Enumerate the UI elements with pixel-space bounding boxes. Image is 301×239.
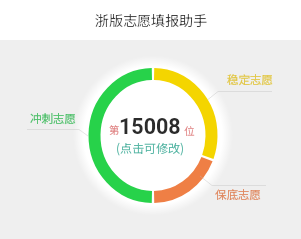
button[interactable]: 稳定志愿 bbox=[227, 71, 273, 88]
button[interactable]: 浙版志愿填报助手 bbox=[0, 0, 301, 40]
staticText: 第 bbox=[109, 122, 120, 137]
staticText: 浙版志愿填报助手 bbox=[95, 10, 207, 30]
button[interactable]: 保底志愿 bbox=[215, 186, 261, 203]
staticText: 15008 bbox=[119, 114, 181, 139]
staticText: 位 bbox=[184, 123, 195, 138]
staticText: (点击可修改) bbox=[116, 139, 185, 156]
button[interactable]: 冲刺志愿 bbox=[30, 110, 76, 127]
button[interactable]: 第 bbox=[90, 100, 210, 160]
